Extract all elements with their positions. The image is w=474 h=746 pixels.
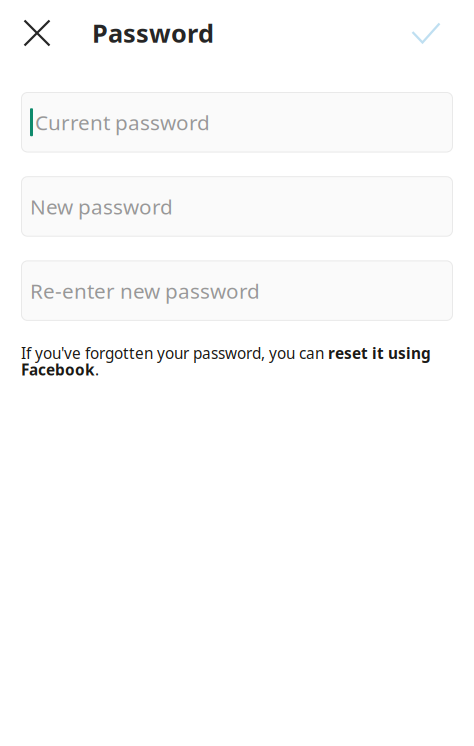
button[interactable]: Current password (21, 92, 453, 152)
staticText: New password (30, 192, 173, 220)
button[interactable]: Re-enter new password (21, 260, 453, 321)
staticText: Re-enter new password (30, 277, 260, 305)
button[interactable]: Save (400, 8, 452, 58)
button[interactable]: New password (21, 176, 453, 237)
staticText: If you've forgotten your password, you c… (21, 343, 431, 380)
button[interactable]: Close (12, 8, 62, 58)
staticText: Current password (35, 108, 210, 136)
staticText: Password (92, 16, 214, 50)
button[interactable]: If you've forgotten your password, you c… (21, 343, 431, 380)
